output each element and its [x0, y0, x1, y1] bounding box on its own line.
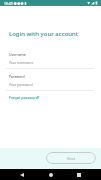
- staticText: Login with your account: [9, 30, 79, 38]
- button[interactable]: Back: [15, 169, 29, 180]
- staticText: Forgot password?: [9, 95, 40, 100]
- staticText: Next: [67, 156, 76, 161]
- staticText: Password: [9, 74, 25, 79]
- button[interactable]: Recents: [72, 169, 86, 180]
- staticText: Your password: [9, 82, 33, 87]
- staticText: Your username: [9, 60, 34, 65]
- staticText: 10:49: [4, 1, 13, 6]
- button[interactable]: Home: [44, 169, 58, 180]
- button[interactable]: Forgot password?: [9, 95, 40, 100]
- staticText: Username: [9, 52, 26, 57]
- button[interactable]: Next: [46, 152, 96, 164]
